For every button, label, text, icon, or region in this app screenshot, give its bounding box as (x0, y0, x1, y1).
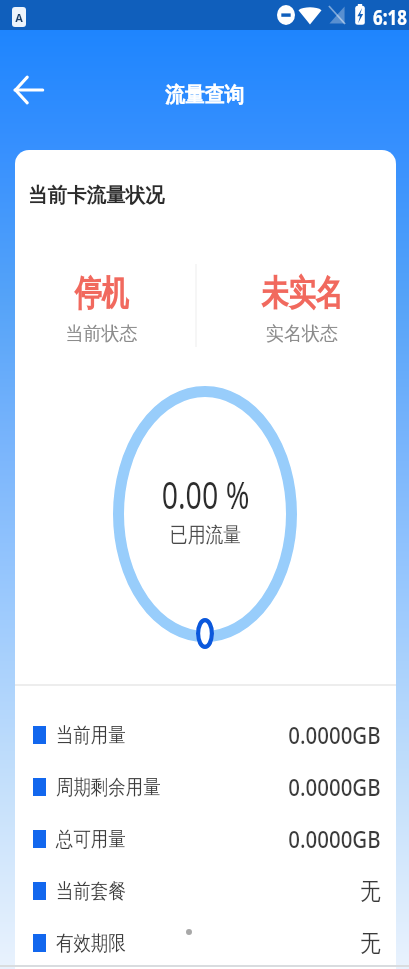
staticText: 当前卡流量状况 (28, 183, 164, 208)
staticText: 无 (360, 876, 381, 906)
staticText: 0.00 % (63, 468, 348, 520)
staticText: 总可用量 (56, 826, 126, 852)
button[interactable]: 当前用量 (15, 709, 396, 761)
staticText: 实名状态 (219, 322, 385, 346)
staticText: 有效期限 (56, 930, 126, 956)
button[interactable]: Back (6, 68, 50, 112)
staticText: 周期剩余用量 (56, 774, 161, 800)
staticText: 6:18 (373, 1, 407, 31)
staticText: 当前状态 (19, 322, 184, 346)
button[interactable]: 有效期限 (15, 917, 396, 969)
staticText: 0.0000GB (288, 823, 381, 855)
staticText: 流量查询 (12, 82, 397, 108)
staticText: 已用流量 (44, 522, 367, 548)
staticText: A (15, 10, 23, 25)
staticText: 无 (360, 928, 381, 958)
staticText: 未实名 (215, 271, 389, 315)
staticText: 当前套餐 (56, 878, 126, 904)
button[interactable]: 当前套餐 (15, 865, 396, 917)
staticText: 当前用量 (56, 722, 126, 748)
button[interactable]: 周期剩余用量 (15, 761, 396, 813)
staticText: 0.0000GB (288, 719, 381, 751)
staticText: 0.0000GB (288, 771, 381, 803)
staticText: 停机 (15, 271, 188, 315)
button[interactable]: 总可用量 (15, 813, 396, 865)
